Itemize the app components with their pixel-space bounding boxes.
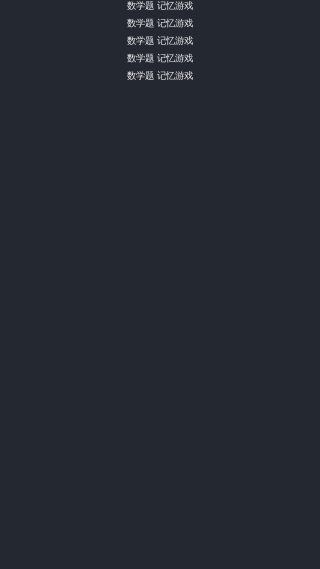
staticText: 数学题 记忆游戏 [127, 0, 193, 11]
staticText: 数学题 记忆游戏 [127, 35, 193, 46]
staticText: 数学题 记忆游戏 [127, 17, 193, 29]
staticText: 数学题 记忆游戏 [127, 70, 193, 81]
staticText: 数学题 记忆游戏 [127, 52, 193, 64]
